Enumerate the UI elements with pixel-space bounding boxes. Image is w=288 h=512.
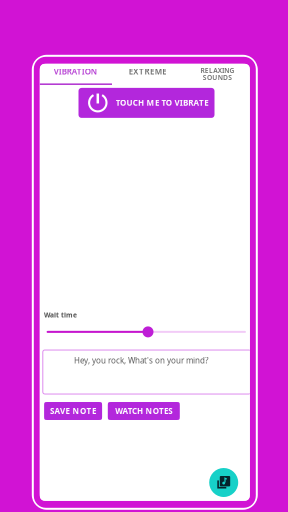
staticText: Wait time xyxy=(44,310,77,319)
button[interactable]: EXTREME xyxy=(110,57,184,85)
button[interactable]: SAVE NOTE xyxy=(44,402,102,420)
button[interactable]: TOUCH ME TO VIBRATE xyxy=(78,88,214,118)
staticText: EXTREME xyxy=(129,66,166,77)
staticText: VIBRATION xyxy=(54,66,97,77)
staticText: SOUNDS xyxy=(203,73,232,82)
staticText: TOUCH ME TO VIBRATE xyxy=(116,97,208,108)
staticText: Hey, you rock, What's on your mind? xyxy=(74,355,208,366)
button[interactable]: RELAXING xyxy=(180,60,254,88)
button[interactable]: Saved notes xyxy=(209,468,238,497)
button[interactable]: VIBRATION xyxy=(38,57,112,85)
button[interactable]: WATCH NOTES xyxy=(108,402,180,420)
staticText: SAVE NOTE xyxy=(50,406,96,416)
staticText: RELAXING xyxy=(200,66,235,75)
staticText: WATCH NOTES xyxy=(115,406,172,416)
